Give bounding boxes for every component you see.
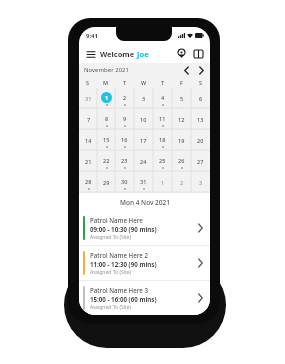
staticText: 26 (178, 157, 185, 164)
staticText: S (86, 79, 90, 86)
staticText: 17 (140, 137, 147, 144)
staticText: 10 (140, 116, 147, 123)
staticText: 21 (85, 158, 92, 165)
staticText: S (199, 79, 203, 86)
button[interactable]: 18 (157, 134, 168, 145)
staticText: 1 (161, 179, 165, 186)
button[interactable]: 31 (83, 93, 94, 104)
button[interactable]: 1 (101, 92, 112, 103)
staticText: 14 (85, 137, 92, 144)
staticText: Assigned To (Site) (90, 304, 132, 311)
button[interactable]: Menu (85, 48, 97, 60)
button[interactable]: 2 (176, 177, 187, 188)
button[interactable]: 11 (157, 113, 168, 124)
staticText: 20 (197, 137, 204, 144)
button[interactable]: 21 (83, 156, 94, 167)
staticText: 18 (159, 136, 166, 143)
button[interactable]: 28 (83, 176, 94, 187)
staticText: 2 (123, 94, 127, 101)
staticText: 5 (180, 95, 184, 102)
button[interactable]: 9 (119, 113, 130, 124)
staticText: Joe (137, 49, 149, 59)
staticText: 3 (142, 95, 146, 102)
staticText: Patrol Name Here 2 (90, 251, 148, 259)
staticText: T (123, 79, 127, 86)
staticText: 24 (140, 158, 147, 165)
staticText: 8 (105, 115, 109, 122)
staticText: Patrol Name Here 3 (90, 286, 148, 294)
staticText: 4 (161, 94, 165, 101)
button[interactable]: 23 (119, 155, 130, 166)
staticText: 3 (199, 179, 203, 186)
button[interactable]: Location (175, 47, 188, 60)
button[interactable]: 15 (101, 134, 112, 145)
button[interactable]: 10 (138, 114, 149, 125)
button[interactable]: 30 (119, 176, 130, 187)
staticText: 9 (123, 115, 127, 122)
staticText: 7 (87, 116, 91, 123)
staticText: 27 (197, 158, 204, 165)
button[interactable]: Previous month (181, 65, 191, 75)
staticText: 25 (159, 157, 166, 164)
staticText: 6 (199, 95, 203, 102)
button[interactable]: Next month (196, 65, 206, 75)
button[interactable]: 26 (176, 155, 187, 166)
button[interactable]: Patrol Name Here 3 (79, 281, 210, 315)
button[interactable]: 3 (195, 177, 206, 188)
staticText: 30 (121, 178, 128, 185)
button[interactable]: 7 (83, 114, 94, 125)
button[interactable]: 27 (195, 156, 206, 167)
button[interactable]: 16 (119, 134, 130, 145)
staticText: 23 (121, 157, 128, 164)
staticText: 19 (178, 137, 185, 144)
staticText: 22 (103, 157, 110, 164)
staticText: Welcome (100, 49, 137, 59)
staticText: 09:00 - 10:30 (90 mins) (90, 225, 157, 233)
button[interactable]: 24 (138, 156, 149, 167)
button[interactable]: 31 (138, 176, 149, 187)
staticText: 12 (178, 116, 185, 123)
button[interactable]: 1 (157, 177, 168, 188)
staticText: 15:00 - 16:00 (60 mins) (90, 295, 157, 303)
button[interactable]: 6 (195, 93, 206, 104)
button[interactable]: 20 (195, 135, 206, 146)
staticText: Assigned To (Site) (90, 269, 132, 276)
staticText: 15 (103, 136, 110, 143)
button[interactable]: 17 (138, 135, 149, 146)
staticText: Assigned To (Site) (90, 234, 132, 241)
button[interactable]: Reports (192, 47, 205, 60)
staticText: M (103, 79, 109, 86)
staticText: T (161, 79, 165, 86)
button[interactable]: Patrol Name Here (79, 211, 210, 245)
button[interactable]: 8 (101, 113, 112, 124)
button[interactable]: 13 (195, 114, 206, 125)
staticText: W (141, 79, 147, 86)
staticText: 11 (159, 115, 166, 122)
button[interactable]: 19 (176, 135, 187, 146)
staticText: 16 (121, 136, 128, 143)
button[interactable]: 4 (157, 92, 168, 103)
staticText: 2 (180, 179, 184, 186)
button[interactable]: 22 (101, 155, 112, 166)
button[interactable]: 12 (176, 114, 187, 125)
staticText: F (180, 79, 183, 86)
staticText: 1 (105, 94, 109, 101)
button[interactable]: 25 (157, 155, 168, 166)
button[interactable]: Patrol Name Here 2 (79, 246, 210, 280)
button[interactable]: 5 (176, 93, 187, 104)
staticText: 29 (103, 179, 110, 186)
button[interactable]: 3 (138, 93, 149, 104)
staticText: 9:41 (86, 32, 98, 40)
staticText: 11:00 - 12:30 (90 mins) (90, 260, 157, 268)
staticText: November 2021 (84, 66, 129, 74)
button[interactable]: 29 (101, 177, 112, 188)
staticText: Patrol Name Here (90, 216, 143, 224)
staticText: 13 (197, 116, 204, 123)
staticText: 31 (140, 178, 147, 185)
other: Open patrol (193, 256, 207, 270)
staticText: 31 (85, 95, 92, 102)
staticText: Mon 4 Nov 2021 (120, 198, 170, 207)
button[interactable]: 14 (83, 135, 94, 146)
button[interactable]: 2 (119, 92, 130, 103)
staticText: 28 (85, 178, 92, 185)
